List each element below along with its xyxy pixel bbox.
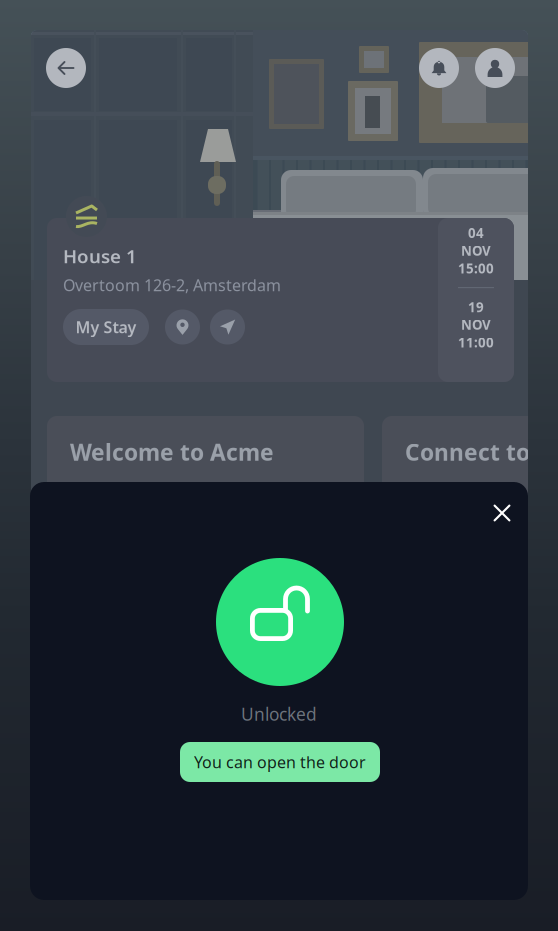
staticText: NOV — [461, 316, 491, 333]
button[interactable]: Back — [46, 48, 86, 88]
staticText: NOV — [461, 242, 491, 259]
button[interactable]: Profile — [475, 48, 515, 88]
staticText: House 1 — [63, 244, 137, 268]
staticText: My Stay — [75, 316, 136, 338]
button[interactable]: Location — [165, 309, 200, 344]
button[interactable]: My Stay — [63, 309, 149, 345]
staticText: Unlocked — [241, 702, 317, 725]
staticText: Connect to your stay — [405, 437, 558, 467]
staticText: 15:00 — [458, 259, 494, 277]
button[interactable]: Welcome to Acme — [47, 416, 364, 548]
button[interactable]: Connect to your stay — [382, 416, 558, 548]
button[interactable]: Close — [478, 489, 526, 537]
staticText: 19 — [468, 298, 484, 316]
staticText: You can open the door — [194, 751, 366, 773]
button[interactable]: You can open the door — [180, 742, 380, 782]
button[interactable]: Notifications — [419, 48, 459, 88]
staticText: Overtoom 126-2, Amsterdam — [63, 274, 281, 296]
staticText: Welcome to Acme — [70, 437, 274, 467]
button[interactable]: Directions — [210, 309, 245, 344]
staticText: 04 — [468, 224, 484, 242]
staticText: 11:00 — [458, 333, 494, 351]
